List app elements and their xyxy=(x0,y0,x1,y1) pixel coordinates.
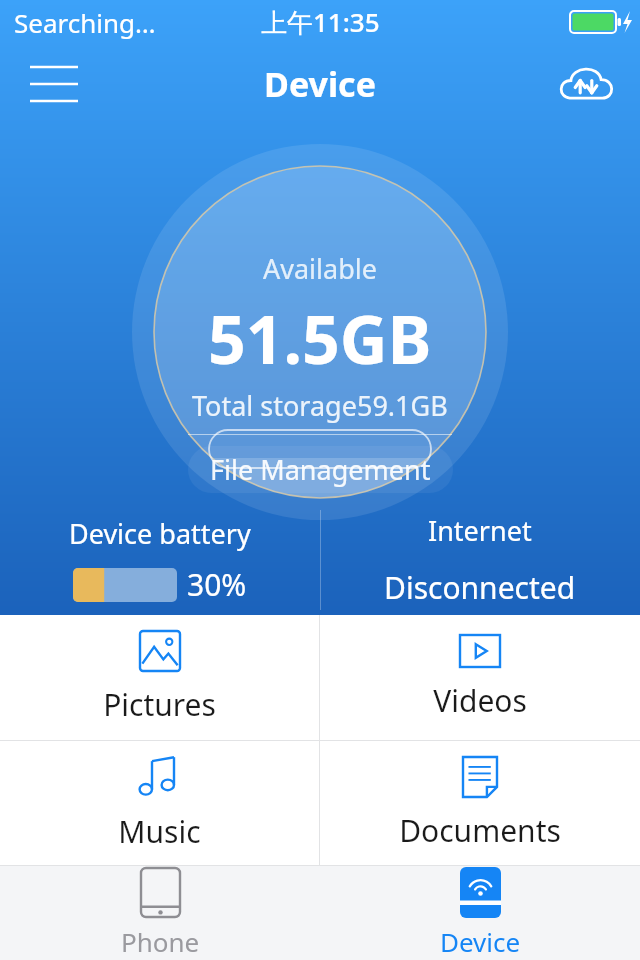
button[interactable]: Videos xyxy=(320,615,640,740)
button[interactable]: Music xyxy=(0,741,319,865)
staticText: Searching… xyxy=(14,5,156,40)
button[interactable]: Menu xyxy=(22,52,86,116)
button[interactable]: Pictures xyxy=(0,615,319,740)
button[interactable]: Documents xyxy=(320,741,640,865)
staticText: Available xyxy=(263,250,377,287)
staticText: Device xyxy=(264,61,376,107)
staticText: Disconnected xyxy=(384,567,576,608)
staticText: Pictures xyxy=(103,684,216,725)
staticText: 51.5GB xyxy=(208,293,432,383)
button[interactable]: Device xyxy=(320,866,640,960)
button[interactable]: File Management xyxy=(188,446,453,493)
button[interactable]: Cloud sync xyxy=(554,52,618,116)
staticText: Videos xyxy=(433,680,527,721)
staticText: Total storage59.1GB xyxy=(192,387,448,424)
staticText: Device xyxy=(440,924,521,959)
staticText: Phone xyxy=(121,924,200,959)
staticText: 上午11:35 xyxy=(261,4,380,40)
staticText: Music xyxy=(118,811,201,852)
staticText: Documents xyxy=(399,810,561,851)
staticText: Internet xyxy=(428,512,532,549)
staticText: 30% xyxy=(187,564,247,605)
staticText: Device battery xyxy=(69,515,251,552)
staticText: File Management xyxy=(210,451,431,488)
button[interactable]: Phone xyxy=(0,866,320,960)
